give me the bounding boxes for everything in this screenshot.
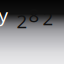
- staticText: 2: [16, 9, 27, 33]
- staticText: 2: [42, 6, 53, 30]
- staticText: y: [0, 3, 8, 27]
- staticText: 8: [28, 3, 39, 27]
